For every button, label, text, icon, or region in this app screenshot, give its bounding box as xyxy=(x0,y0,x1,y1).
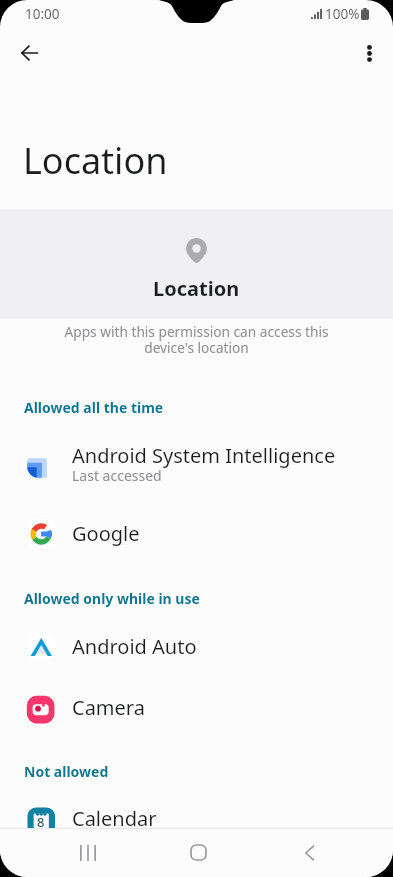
staticText: Last accessed xyxy=(72,466,162,485)
staticText: 8 xyxy=(37,813,45,831)
staticText: Allowed all the time xyxy=(24,398,164,417)
button[interactable]: Home xyxy=(170,828,226,877)
staticText: Not allowed xyxy=(24,762,109,781)
staticText: Location xyxy=(23,136,168,185)
staticText: Calendar xyxy=(72,805,157,832)
button[interactable]: Recents xyxy=(60,828,116,877)
staticText: Android System Intelligence xyxy=(72,442,336,469)
button[interactable]: Android System Intelligence xyxy=(0,428,393,503)
button[interactable]: More options xyxy=(345,29,393,77)
staticText: Location xyxy=(153,275,240,302)
staticText: 10:00 xyxy=(25,5,60,23)
button[interactable]: 8 xyxy=(0,788,393,849)
staticText: Android Auto xyxy=(72,633,197,660)
button[interactable]: Back xyxy=(5,29,53,77)
staticText: Google xyxy=(72,520,140,547)
staticText: 100% xyxy=(325,5,360,23)
button[interactable]: Android Auto xyxy=(0,616,393,677)
staticText: Apps with this permission can access thi… xyxy=(50,322,343,357)
button[interactable]: Google xyxy=(0,503,393,564)
staticText: Camera xyxy=(72,694,145,721)
button[interactable]: Camera xyxy=(0,677,393,738)
button[interactable]: Back xyxy=(281,828,337,877)
staticText: Allowed only while in use xyxy=(24,589,200,608)
